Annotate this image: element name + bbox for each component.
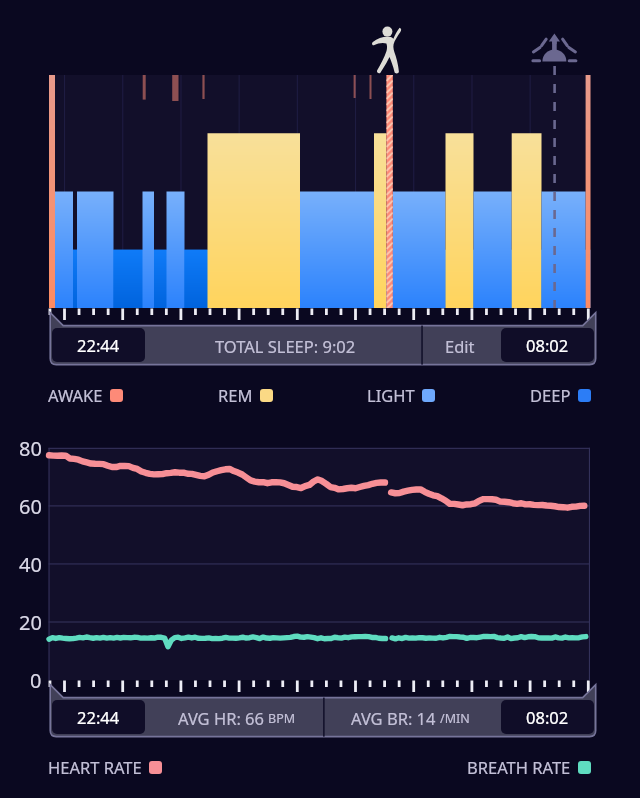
staticText: BPM xyxy=(268,710,296,727)
button[interactable]: AVG BR: 14 xyxy=(325,698,496,737)
staticText: 40 xyxy=(19,551,42,578)
button[interactable]: DEEP xyxy=(530,384,591,406)
staticText: AVG BR: 14 xyxy=(351,707,436,729)
staticText: 08:02 xyxy=(526,706,569,728)
button[interactable]: TOTAL SLEEP: 9:02 xyxy=(150,326,421,365)
button[interactable]: AVG HR: 66 xyxy=(150,698,323,737)
button[interactable]: 22:44 xyxy=(52,328,145,362)
staticText: BREATH RATE xyxy=(467,756,571,778)
button[interactable]: REM xyxy=(218,384,273,406)
staticText: 0 xyxy=(30,667,42,694)
staticText: 22:44 xyxy=(77,706,120,728)
button[interactable]: BREATH RATE xyxy=(467,756,591,778)
button[interactable]: 08:02 xyxy=(501,700,594,734)
staticText: HEART RATE xyxy=(48,756,142,778)
staticText: 22:44 xyxy=(77,334,120,356)
button[interactable]: Edit xyxy=(423,326,496,365)
staticText: /MIN xyxy=(440,710,470,727)
staticText: TOTAL SLEEP: 9:02 xyxy=(215,335,356,357)
staticText: 08:02 xyxy=(526,334,569,356)
button[interactable]: LIGHT xyxy=(367,384,435,406)
button[interactable]: AWAKE xyxy=(48,384,123,406)
staticText: REM xyxy=(218,384,253,406)
staticText: DEEP xyxy=(530,384,571,406)
staticText: 60 xyxy=(19,493,42,520)
button[interactable]: 22:44 xyxy=(52,700,145,734)
staticText: LIGHT xyxy=(367,384,415,406)
staticText: 20 xyxy=(19,609,42,636)
staticText: 80 xyxy=(19,435,42,462)
button[interactable]: 08:02 xyxy=(501,328,594,362)
button[interactable]: HEART RATE xyxy=(48,756,162,778)
staticText: Edit xyxy=(445,335,475,357)
staticText: AWAKE xyxy=(48,384,103,406)
staticText: AVG HR: 66 xyxy=(178,707,264,729)
